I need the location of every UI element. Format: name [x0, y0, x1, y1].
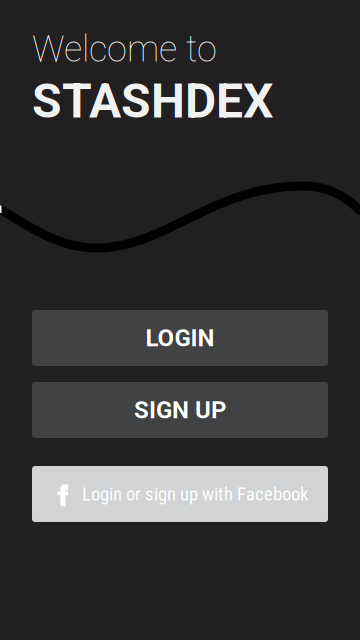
- button[interactable]: SIGN UP: [32, 382, 328, 438]
- staticText: Login or sign up with Facebook: [82, 483, 308, 505]
- button[interactable]: LOGIN: [32, 310, 328, 366]
- button[interactable]: Login or sign up with Facebook: [32, 466, 328, 522]
- staticText: SIGN UP: [134, 396, 226, 424]
- staticText: LOGIN: [145, 324, 214, 352]
- staticText: Welcome to: [32, 28, 217, 70]
- staticText: STASHDEX: [32, 73, 273, 129]
